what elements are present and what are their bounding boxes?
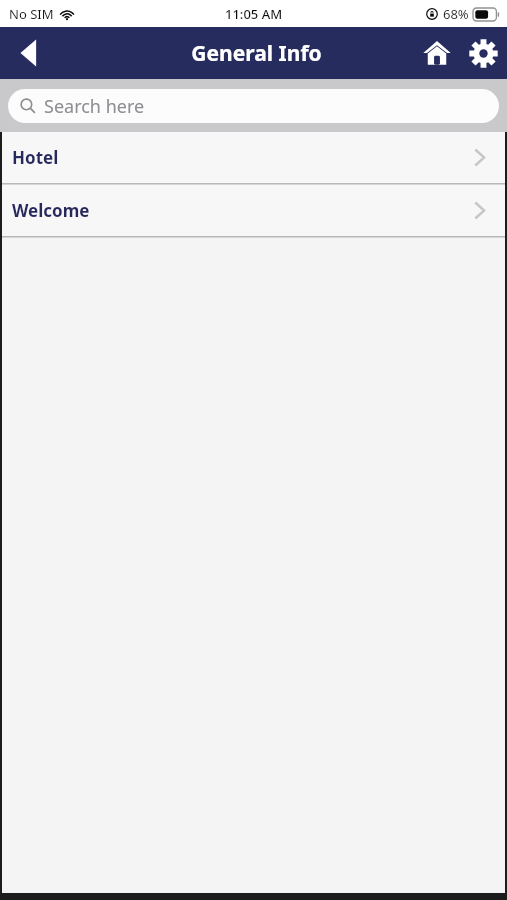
button[interactable]: Search here — [8, 89, 499, 123]
button[interactable]: Settings — [459, 27, 507, 79]
button[interactable]: Welcome — [0, 185, 507, 236]
button[interactable]: Hotel — [0, 132, 507, 183]
staticText: General Info — [191, 39, 322, 68]
button[interactable]: Back — [0, 27, 56, 79]
staticText: 68% — [443, 5, 469, 23]
staticText: 11:05 AM — [225, 5, 283, 23]
button[interactable]: Home — [415, 27, 459, 79]
staticText: Hotel — [12, 146, 59, 169]
staticText: Welcome — [12, 199, 90, 222]
staticText: No SIM — [9, 5, 54, 23]
staticText: Search here — [44, 94, 145, 119]
